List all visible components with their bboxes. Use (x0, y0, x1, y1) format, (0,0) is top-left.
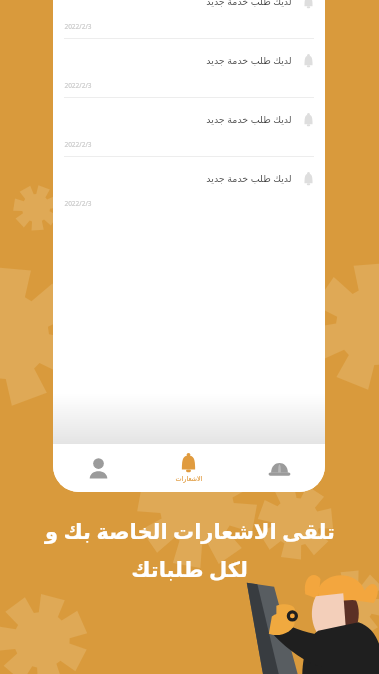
staticText: لديك طلب خدمة جديد (206, 0, 292, 8)
staticText: تلقى الاشعارات الخاصة بك و (45, 517, 335, 546)
staticText: لديك طلب خدمة جديد (206, 113, 292, 126)
button[interactable]: لديك طلب خدمة جديد (53, 157, 325, 199)
staticText: 2022/2/3 (64, 81, 92, 90)
staticText: الاشعارات (175, 475, 203, 483)
button[interactable]: لديك طلب خدمة جديد (53, 39, 325, 81)
button[interactable]: لديك طلب خدمة جديد (53, 0, 325, 22)
staticText: 2022/2/3 (64, 22, 92, 31)
button[interactable]: الاشعارات (143, 444, 234, 492)
button[interactable]: لديك طلب خدمة جديد (53, 98, 325, 140)
staticText: لديك طلب خدمة جديد (206, 172, 292, 185)
button[interactable]: Profile (53, 444, 143, 492)
staticText: لكل طلباتك (131, 555, 248, 584)
staticText: 2022/2/3 (64, 199, 92, 208)
staticText: 2022/2/3 (64, 140, 92, 149)
staticText: لديك طلب خدمة جديد (206, 54, 292, 67)
button[interactable]: Services (234, 444, 325, 492)
